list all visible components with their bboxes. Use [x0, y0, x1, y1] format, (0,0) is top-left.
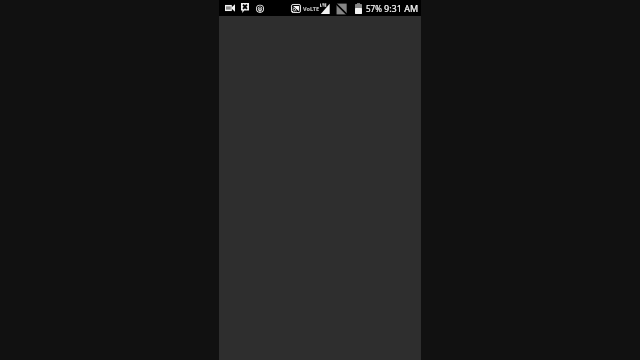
other: LTE signal full: [320, 3, 331, 14]
staticText: VoLTE: [303, 5, 320, 12]
other: Battery 57 percent: [355, 3, 362, 14]
other: Hotspot on: [256, 4, 264, 13]
other: Screen cast connected: [291, 4, 301, 13]
other: Screen recording active: [225, 4, 235, 12]
other: Message blocked: [241, 3, 249, 13]
staticText: 57%: [366, 3, 382, 14]
staticText: 9:31 AM: [384, 2, 419, 14]
button[interactable]: App content: [219, 0, 421, 360]
other: Second SIM no service: [336, 3, 347, 15]
